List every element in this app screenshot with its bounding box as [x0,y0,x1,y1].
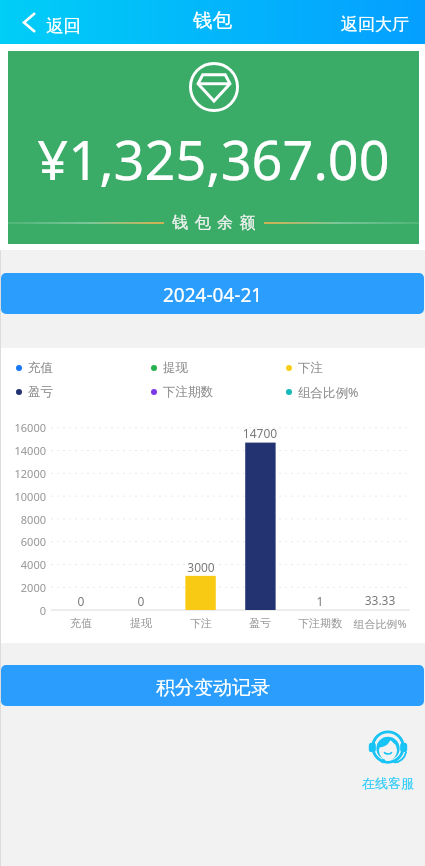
staticText: 组合比例% [298,384,359,401]
button[interactable]: 充值 [16,359,151,377]
staticText: 3000 [171,559,231,575]
staticText: 下注 [168,616,234,630]
staticText: 钱包 [193,8,232,33]
button[interactable]: 在线客服 [362,730,414,791]
staticText: 充值 [28,360,53,376]
staticText: 0 [51,593,111,609]
staticText: 盈亏 [28,384,53,400]
button[interactable]: 提现 [151,359,286,377]
button[interactable]: 组合比例% [286,383,421,401]
staticText: 33.33 [350,592,410,608]
staticText: 提现 [108,616,174,630]
staticText: 下注期数 [287,616,353,630]
staticText: 下注期数 [163,384,213,400]
staticText: 14700 [230,425,290,441]
staticText: 在线客服 [362,775,414,791]
button[interactable]: 2024-04-21 [1,273,424,314]
staticText: 2024-04-21 [163,282,263,308]
staticText: 14000 [0,443,46,458]
button[interactable]: 积分变动记录 [1,665,424,706]
staticText: 8000 [0,512,46,527]
button[interactable]: 返回 [0,0,95,44]
button[interactable]: 下注期数 [151,383,286,401]
staticText: 6000 [0,534,46,549]
button[interactable]: 盈亏 [16,383,151,401]
staticText: 1 [290,593,350,609]
staticText: 返回大厅 [341,14,409,35]
button[interactable]: 下注 [286,359,421,377]
staticText: 12000 [0,466,46,481]
staticText: 返回 [46,15,81,37]
staticText: 16000 [0,420,46,435]
staticText: 10000 [0,489,46,504]
staticText: 钱包余额 [169,213,259,233]
staticText: 0 [0,603,46,618]
staticText: 下注 [298,360,323,376]
button[interactable]: 返回大厅 [327,0,425,44]
staticText: 积分变动记录 [156,676,270,700]
staticText: 2000 [0,580,46,595]
staticText: 提现 [163,360,188,376]
staticText: 组合比例% [347,616,413,631]
staticText: 盈亏 [227,616,293,630]
staticText: 4000 [0,557,46,572]
staticText: 0 [111,593,171,609]
staticText: 充值 [48,616,114,630]
staticText: ¥1,325,367.00 [8,122,419,196]
